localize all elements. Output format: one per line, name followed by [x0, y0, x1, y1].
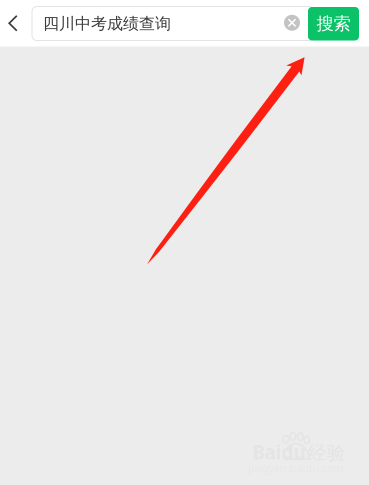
button[interactable]: Back: [0, 6, 26, 40]
staticText: Baidu: [252, 440, 305, 464]
staticText: 搜索: [316, 13, 350, 34]
staticText: 四川中考成绩查询: [43, 14, 171, 34]
staticText: 经验: [308, 441, 346, 464]
button[interactable]: Clear text: [278, 8, 306, 38]
button[interactable]: 搜索: [308, 7, 359, 40]
